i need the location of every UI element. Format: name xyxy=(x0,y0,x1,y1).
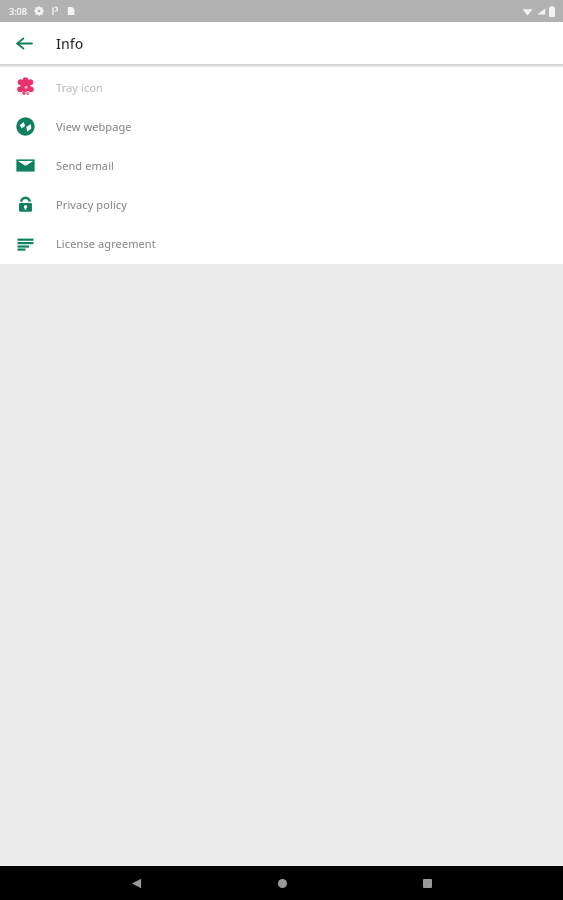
button[interactable]: Send email xyxy=(0,146,563,185)
button[interactable]: License agreement xyxy=(0,224,563,263)
staticText: 3:08 xyxy=(9,5,27,17)
button[interactable]: Privacy policy xyxy=(0,185,563,224)
staticText: Info xyxy=(56,34,84,53)
button[interactable]: Home xyxy=(266,867,298,899)
button[interactable]: Back xyxy=(10,29,38,57)
button[interactable]: Recent apps xyxy=(411,867,443,899)
staticText: Tray icon xyxy=(56,80,104,95)
button[interactable]: View webpage xyxy=(0,107,563,146)
staticText: Privacy policy xyxy=(56,197,127,212)
staticText: License agreement xyxy=(56,236,156,251)
button[interactable]: Tray icon xyxy=(0,68,563,107)
staticText: Send email xyxy=(56,158,115,173)
staticText: View webpage xyxy=(56,119,132,134)
button[interactable]: Back xyxy=(120,867,152,899)
